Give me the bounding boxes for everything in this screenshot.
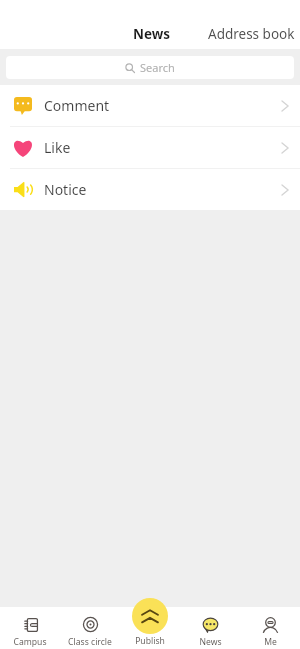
staticText: Notice xyxy=(44,180,87,199)
button[interactable]: News xyxy=(180,607,240,649)
staticText: Address book xyxy=(208,25,295,43)
button[interactable]: Campus xyxy=(0,607,60,649)
button[interactable]: Publish xyxy=(120,635,180,647)
staticText: Comment xyxy=(44,96,110,115)
button[interactable]: Address book xyxy=(202,18,300,49)
button[interactable]: Class circle xyxy=(60,607,120,649)
staticText: News xyxy=(199,636,222,648)
button[interactable]: Search xyxy=(6,56,294,79)
button[interactable]: Like xyxy=(0,127,300,168)
staticText: Publish xyxy=(135,635,165,647)
staticText: News xyxy=(133,25,171,43)
staticText: Class circle xyxy=(68,636,112,648)
staticText: Me xyxy=(264,636,277,648)
button[interactable]: Notice xyxy=(0,169,300,210)
staticText: Like xyxy=(44,138,71,157)
staticText: Campus xyxy=(13,636,47,648)
button[interactable]: Comment xyxy=(0,85,300,126)
button[interactable]: Publish xyxy=(132,598,168,634)
button[interactable]: Me xyxy=(240,607,300,649)
button[interactable]: News xyxy=(129,18,175,49)
staticText: Search xyxy=(140,60,175,75)
